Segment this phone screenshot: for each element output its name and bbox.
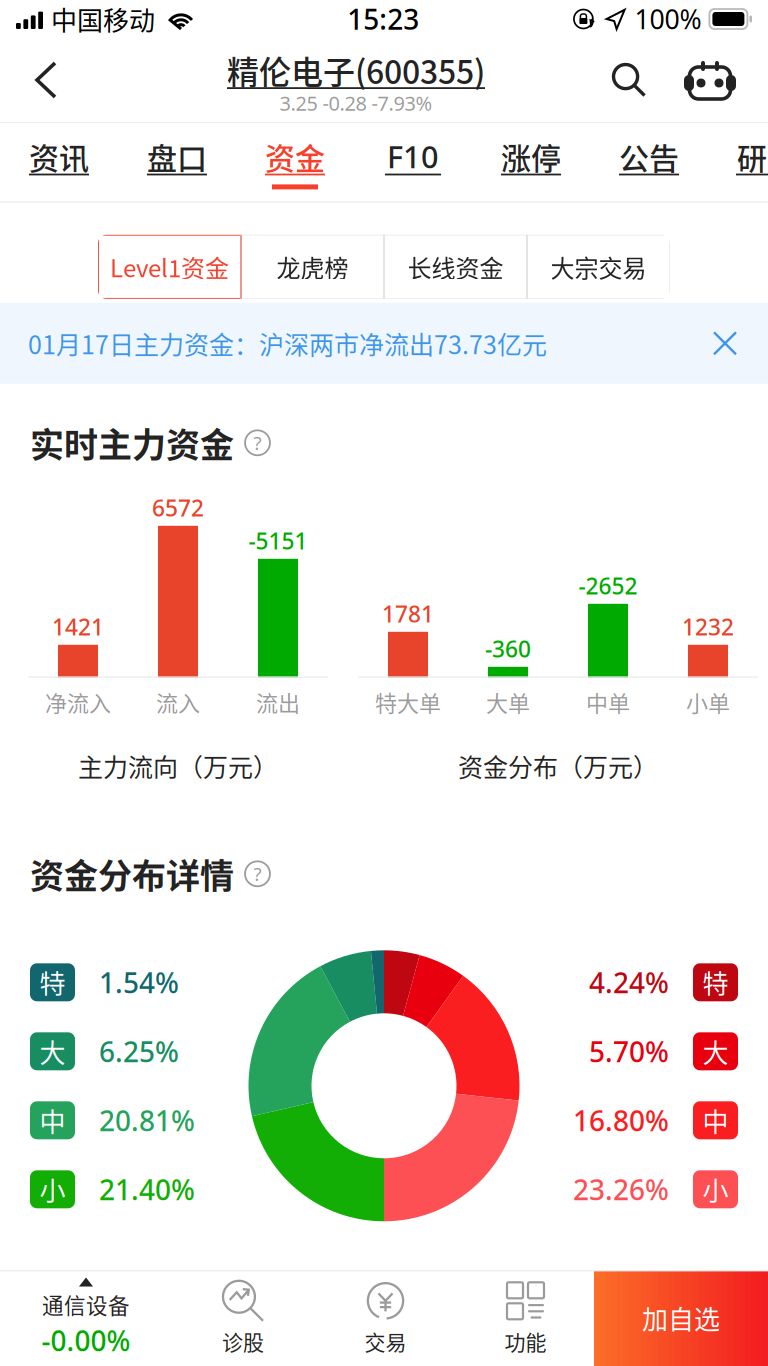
- staticText: 诊股: [222, 1326, 264, 1356]
- button[interactable]: 公告: [590, 123, 708, 201]
- staticText: 特: [702, 963, 728, 1001]
- staticText: -360: [485, 634, 531, 664]
- staticText: ?: [253, 861, 261, 886]
- staticText: 小单: [686, 686, 730, 718]
- staticText: 资讯: [29, 135, 89, 178]
- button[interactable]: 通信设备: [0, 1270, 172, 1366]
- staticText: 6.25%: [99, 1033, 179, 1070]
- staticText: 小: [39, 1170, 65, 1208]
- staticText: 盘口: [147, 135, 207, 178]
- button[interactable]: AI assistant: [664, 38, 756, 122]
- staticText: Level1资金: [110, 249, 229, 284]
- staticText: 特大单: [375, 686, 441, 718]
- staticText: 特: [39, 963, 65, 1001]
- button[interactable]: 交易: [314, 1270, 457, 1366]
- staticText: 中: [702, 1101, 728, 1139]
- staticText: 1421: [52, 612, 104, 642]
- button[interactable]: Level1资金: [98, 235, 241, 299]
- staticText: 资金: [265, 135, 325, 178]
- staticText: 公告: [619, 135, 679, 178]
- staticText: 大: [39, 1032, 65, 1070]
- staticText: 1232: [682, 612, 734, 642]
- button[interactable]: 研: [708, 123, 768, 201]
- staticText: F10: [387, 136, 439, 177]
- button[interactable]: 长线资金: [384, 235, 527, 299]
- staticText: 加自选: [642, 1299, 720, 1337]
- staticText: 中国移动: [51, 0, 155, 38]
- button[interactable]: 资讯: [0, 123, 118, 201]
- button[interactable]: Dismiss banner: [696, 314, 754, 372]
- staticText: 6572: [152, 493, 204, 523]
- staticText: 中: [39, 1101, 65, 1139]
- staticText: 资金分布详情: [30, 849, 234, 898]
- button[interactable]: 功能: [457, 1270, 594, 1366]
- staticText: 长线资金: [407, 249, 503, 284]
- staticText: 100%: [634, 1, 701, 37]
- staticText: 15:23: [347, 0, 419, 38]
- staticText: 23.26%: [573, 1171, 669, 1208]
- staticText: 中单: [586, 686, 630, 718]
- staticText: 1.54%: [99, 964, 179, 1001]
- staticText: 4.24%: [589, 964, 669, 1001]
- staticText: 精伦电子(600355): [227, 47, 485, 93]
- staticText: 流入: [156, 686, 200, 718]
- button[interactable]: 盘口: [118, 123, 236, 201]
- button[interactable]: F10: [354, 123, 472, 201]
- staticText: 实时主力资金: [30, 418, 234, 467]
- staticText: 龙虎榜: [276, 249, 348, 284]
- staticText: 研: [737, 135, 767, 178]
- staticText: 3.25 -0.28 -7.93%: [279, 90, 432, 116]
- button[interactable]: Back: [4, 38, 88, 122]
- button[interactable]: 诊股: [172, 1270, 314, 1366]
- staticText: 大宗交易: [550, 249, 646, 284]
- staticText: -0.00%: [41, 1322, 130, 1359]
- staticText: 1781: [382, 599, 434, 629]
- staticText: 交易: [364, 1326, 406, 1356]
- button[interactable]: 大宗交易: [527, 235, 670, 299]
- staticText: -2652: [578, 571, 637, 601]
- staticText: 资金分布（万元）: [458, 748, 658, 784]
- staticText: 01月17日主力资金：沪深两市净流出73.73亿元: [28, 325, 547, 361]
- staticText: 流出: [256, 686, 300, 718]
- button[interactable]: Search: [594, 38, 664, 122]
- staticText: 功能: [504, 1326, 546, 1356]
- button[interactable]: 加自选: [594, 1270, 768, 1366]
- staticText: 主力流向（万元）: [78, 748, 278, 784]
- button[interactable]: 涨停: [472, 123, 590, 201]
- staticText: 小: [702, 1170, 728, 1208]
- staticText: 21.40%: [99, 1171, 195, 1208]
- staticText: 大单: [486, 686, 530, 718]
- staticText: 通信设备: [42, 1289, 130, 1320]
- staticText: 涨停: [501, 135, 561, 178]
- button[interactable]: 资金: [236, 123, 354, 201]
- staticText: 16.80%: [573, 1102, 669, 1139]
- staticText: 大: [702, 1032, 728, 1070]
- staticText: 5.70%: [589, 1033, 669, 1070]
- staticText: -5151: [248, 526, 307, 556]
- staticText: ?: [253, 430, 261, 455]
- staticText: 20.81%: [99, 1102, 195, 1139]
- button[interactable]: 龙虎榜: [241, 235, 384, 299]
- staticText: 净流入: [45, 686, 111, 718]
